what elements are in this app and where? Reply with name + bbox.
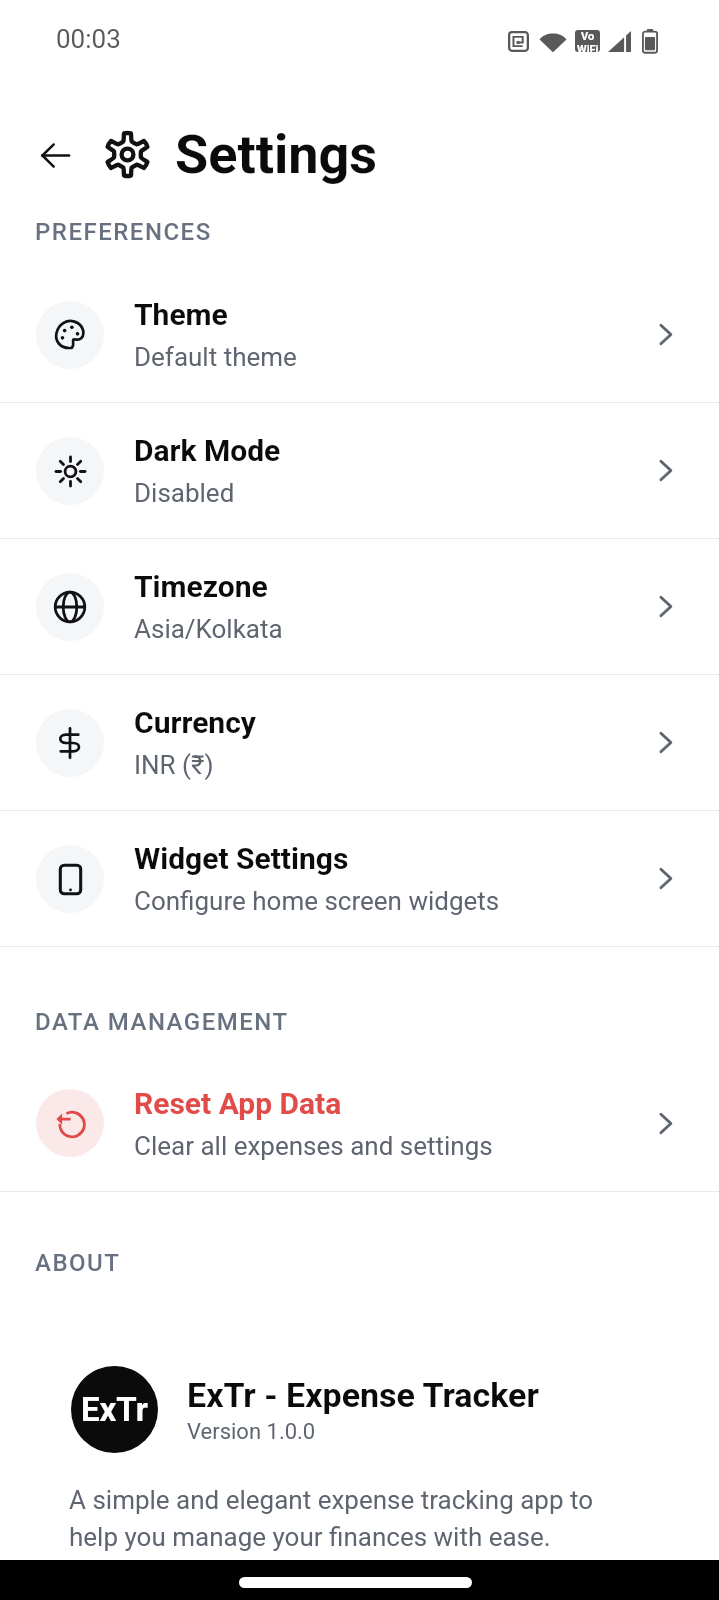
staticText: Version 1.0.0 [187,1419,316,1445]
staticText: Theme [134,297,228,332]
staticText: 00:03 [56,24,121,54]
staticText: PREFERENCES [35,218,212,246]
staticText: Currency [134,705,256,740]
staticText: Settings [175,123,378,186]
button[interactable]: Reset App Data [0,1055,719,1191]
staticText: Default theme [134,342,297,372]
staticText: A simple and elegant expense tracking ap… [69,1485,611,1553]
staticText: Clear all expenses and settings [134,1131,493,1161]
staticText: WiFi [577,43,599,52]
button[interactable]: Back [27,127,83,183]
staticText: Asia/Kolkata [134,614,283,644]
button[interactable]: Dark Mode [0,403,719,538]
button[interactable]: Theme [0,267,719,402]
button[interactable]: Widget Settings [0,811,719,946]
staticText: Vo [581,30,595,43]
button[interactable]: Timezone [0,539,719,674]
staticText: ABOUT [35,1249,121,1277]
staticText: ExTr [81,1390,148,1429]
staticText: Dark Mode [134,433,281,468]
staticText: Disabled [134,478,235,508]
staticText: Timezone [134,569,268,604]
staticText: Configure home screen widgets [134,886,500,916]
staticText: INR (₹) [134,750,214,780]
staticText: ExTr - Expense Tracker [187,1375,539,1415]
staticText: Reset App Data [134,1086,342,1121]
button[interactable]: Currency [0,675,719,810]
staticText: Widget Settings [134,841,349,876]
staticText: DATA MANAGEMENT [35,1008,289,1036]
